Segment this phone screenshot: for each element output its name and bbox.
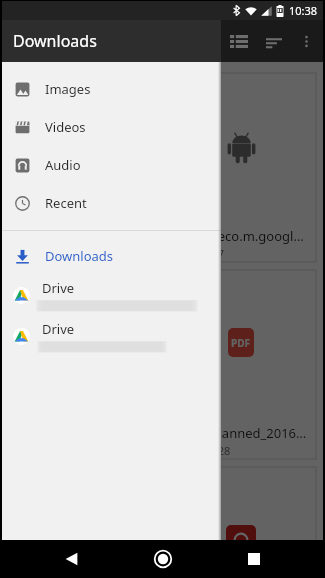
button[interactable]: report_final_2016.pdf (166, 467, 316, 578)
staticText: com.android.vending.apk (17, 227, 151, 245)
button[interactable]: Audio (0, 146, 221, 184)
staticText: Scan_Scanned_20161105_1028.pdf (174, 424, 309, 442)
staticText: 12,345,628 (174, 443, 231, 458)
staticText: PDF (231, 336, 251, 350)
staticText: PDF (74, 336, 94, 350)
staticText: report_final_2016.pdf (174, 543, 305, 561)
button[interactable]: Home (143, 540, 183, 578)
button[interactable]: Drive (0, 316, 221, 357)
staticText: Downloads (45, 247, 114, 265)
staticText: Drive (42, 279, 75, 297)
button[interactable]: Images (0, 70, 221, 108)
button[interactable]: Drive (0, 275, 221, 316)
button[interactable]: packageco.m.google.android.gms.apk (166, 73, 316, 262)
button[interactable]: Recent (0, 184, 221, 222)
staticText: Videos (45, 118, 86, 136)
staticText: Downloads (13, 30, 97, 52)
staticText: Images (45, 80, 91, 98)
button[interactable]: Sort (256, 20, 291, 62)
button[interactable]: Recents (234, 540, 274, 578)
button[interactable]: Grid view (217, 20, 256, 62)
button[interactable]: PDF (166, 270, 316, 459)
staticText: 1,234,567 (174, 246, 224, 261)
button[interactable]: Downloads (0, 237, 221, 275)
button[interactable]: Back (51, 540, 91, 578)
staticText: Audio (45, 156, 81, 174)
button[interactable]: More options (291, 20, 321, 62)
button[interactable]: doc_file_20161105.docx (9, 467, 158, 578)
staticText: doc_file_20161105.docx (17, 543, 151, 561)
staticText: packageco.m.google.android.gms.apk (174, 227, 309, 245)
staticText: Recent (45, 194, 87, 212)
staticText: 1.2 MB (17, 246, 53, 261)
staticText: Drive (42, 320, 75, 338)
staticText: 10:38 (289, 3, 318, 18)
button[interactable]: Videos (0, 108, 221, 146)
button[interactable]: com.android.vending.apk (9, 73, 158, 262)
button[interactable]: PDF (9, 270, 158, 459)
